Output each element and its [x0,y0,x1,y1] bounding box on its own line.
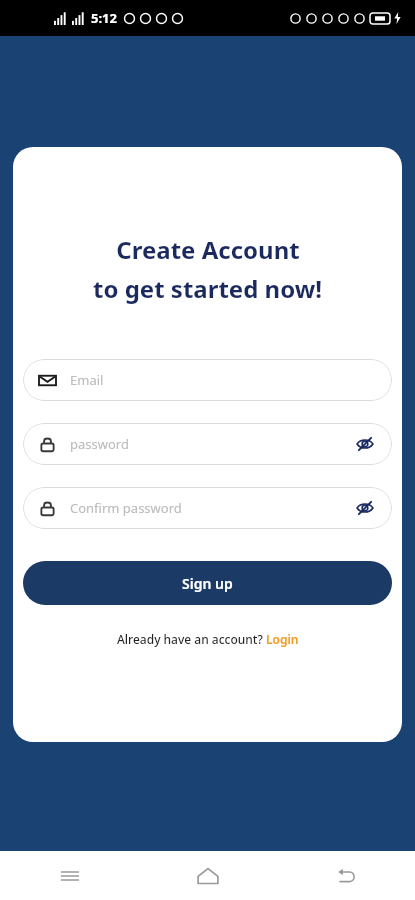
staticText: Confirm password [70,499,354,517]
button[interactable]: Show password [354,497,376,519]
button[interactable]: Email [23,359,392,401]
button[interactable]: Show password [354,433,376,455]
button[interactable]: password [23,423,392,465]
staticText: Email [70,371,376,389]
staticText: 5:12 [91,9,117,27]
staticText: Sign up [182,574,233,593]
button[interactable]: Already have an account? Login [113,629,303,649]
staticText: password [70,435,354,453]
button[interactable]: Confirm password [23,487,392,529]
button[interactable]: Back [277,851,415,900]
button[interactable]: Recent apps [0,851,139,900]
button[interactable]: Home [139,851,277,900]
staticText: Create Account [116,233,300,266]
staticText: to get started now! [93,272,322,305]
staticText: Already have an account? Login [117,631,299,647]
button[interactable]: Sign up [23,561,392,605]
